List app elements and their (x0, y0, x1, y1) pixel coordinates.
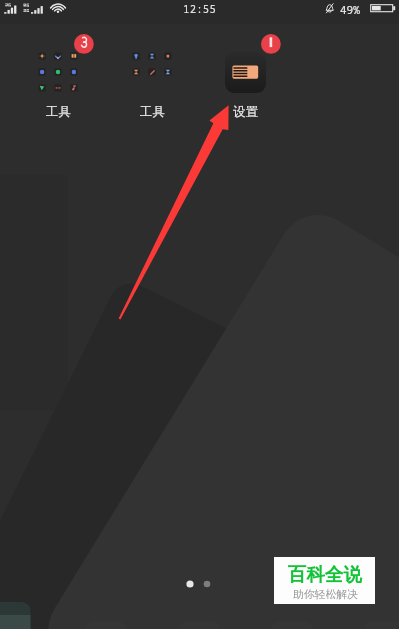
staticText: 助你轻松解决 (293, 588, 358, 602)
button[interactable]: 1 条通知 (261, 34, 281, 54)
staticText: 49% (340, 2, 360, 17)
staticText: 设置 (233, 104, 258, 120)
staticText: 工具 (140, 104, 165, 120)
staticText: 百科全说 (288, 563, 362, 586)
button[interactable]: 工具 (23, 31, 93, 121)
button[interactable]: 设置 (210, 31, 280, 121)
staticText: 工具 (46, 104, 71, 120)
button[interactable]: 3 条通知 (74, 34, 94, 54)
button[interactable]: 工具 (117, 31, 187, 121)
staticText: 12:55 (183, 2, 216, 16)
